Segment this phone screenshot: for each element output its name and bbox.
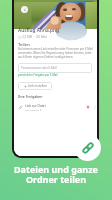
staticText: Ihre Freigaben xyxy=(18,94,43,99)
staticText: Personenname oder E-Mail xyxy=(21,66,57,70)
button[interactable]: Personenname oder E-Mail xyxy=(18,63,92,73)
staticText: Ausflug Anna.png xyxy=(18,27,59,34)
staticText: Link zur Datei xyxy=(25,104,46,108)
staticText: Dateien und ganze Ordner teilen xyxy=(14,163,98,186)
button[interactable]: Link teilen xyxy=(74,134,101,161)
staticText: 2,3 MB · 20. Mai xyxy=(22,35,47,39)
button[interactable]: persönliche Freigabe per E-Mail xyxy=(18,73,58,77)
button[interactable]: Link zur Datei xyxy=(18,102,97,112)
staticText: Nur Ansicht ▾ xyxy=(25,108,42,111)
staticText: Teilen xyxy=(18,42,30,48)
staticText: persönliche Freigabe per E-Mail xyxy=(18,73,58,77)
button[interactable]: Link erstellen xyxy=(18,82,52,90)
button[interactable]: Zurück xyxy=(21,6,28,13)
staticText: Sie können einen Link erstellen oder Per… xyxy=(18,47,93,59)
staticText: Link erstellen xyxy=(28,84,47,88)
